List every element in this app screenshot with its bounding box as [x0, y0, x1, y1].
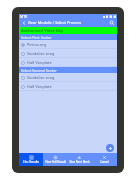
- staticText: View Full Result: [45, 160, 66, 164]
- button[interactable]: Half Vonplate: [19, 82, 117, 91]
- button[interactable]: Add: [106, 144, 114, 152]
- button[interactable]: Cancel: [92, 153, 117, 166]
- staticText: Select First Sector: [21, 35, 52, 40]
- button[interactable]: Elec Results: [19, 153, 43, 166]
- staticText: Elec Results: [23, 160, 39, 164]
- button[interactable]: Half Vonplate: [19, 58, 117, 67]
- button[interactable]: Search: [107, 18, 116, 27]
- button[interactable]: View Full Result: [43, 153, 67, 166]
- staticText: Vandalise song: [27, 51, 55, 56]
- button[interactable]: Vandalise song: [19, 49, 117, 58]
- staticText: Petrus.org: [27, 42, 47, 47]
- button[interactable]: Petrus.org: [19, 40, 117, 49]
- button[interactable]: Back: [19, 18, 28, 27]
- staticText: Star Kent Bank: [69, 160, 90, 164]
- staticText: Authorised Valve Key: [21, 28, 64, 34]
- button[interactable]: Star Kent Bank: [67, 153, 92, 166]
- staticText: Cancel: [100, 160, 109, 164]
- staticText: Half Vonplate: [27, 60, 52, 65]
- staticText: Half Vonplate: [27, 84, 52, 89]
- staticText: Select Second Sector: [21, 68, 57, 73]
- button[interactable]: Vandalise song: [19, 73, 117, 82]
- staticText: Vandalise song: [27, 75, 55, 80]
- staticText: Gear Module / Select Process: [28, 20, 82, 25]
- staticText: MTK: [20, 14, 28, 18]
